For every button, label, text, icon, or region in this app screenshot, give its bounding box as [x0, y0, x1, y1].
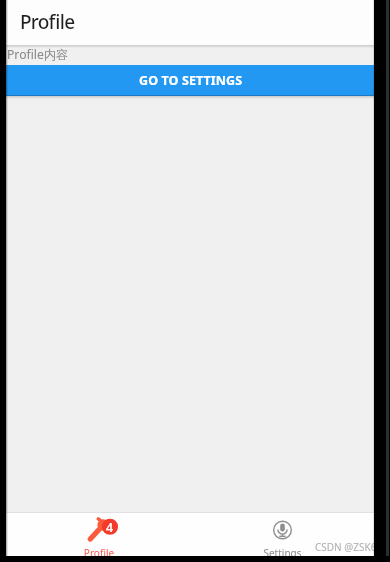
- staticText: Profile内容: [7, 46, 69, 63]
- staticText: 4: [106, 519, 114, 536]
- staticText: CSDN @ZSK63: [315, 540, 383, 554]
- staticText: GO TO SETTINGS: [139, 72, 243, 89]
- button[interactable]: 4: [6, 513, 190, 556]
- staticText: Settings: [190, 546, 375, 560]
- button[interactable]: GO TO SETTINGS: [6, 65, 375, 96]
- staticText: Profile: [20, 9, 75, 35]
- staticText: Profile: [7, 546, 191, 560]
- button[interactable]: Settings: [190, 513, 375, 556]
